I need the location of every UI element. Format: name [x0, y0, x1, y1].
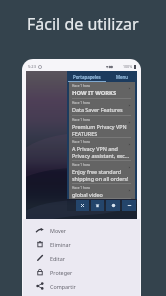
button[interactable]: Mover	[23, 223, 140, 237]
staticText: Hace 1 hora	[72, 101, 90, 105]
button[interactable]: Hace 1 hora	[69, 99, 135, 116]
staticText: Portapapeles	[73, 74, 101, 80]
staticText: 5:23	[28, 64, 36, 69]
button[interactable]: Close	[76, 200, 89, 211]
button[interactable]: Hace 1 hora	[69, 184, 135, 199]
button[interactable]: Hace 1 hora	[69, 82, 135, 99]
staticText: Data Saver Features	[72, 106, 123, 113]
staticText: Hace 1 hora	[72, 140, 90, 144]
button[interactable]: Menu	[107, 71, 137, 82]
button[interactable]: Hace 1 hora	[69, 116, 135, 138]
staticText: Premium Privacy VPN	[72, 123, 127, 130]
staticText: Hace 1 hora	[72, 163, 90, 167]
button[interactable]: More	[122, 200, 136, 211]
staticText: global video	[72, 191, 103, 198]
button[interactable]: Delete	[91, 200, 104, 211]
staticText: shipping on all orders!	[72, 175, 129, 182]
staticText: Mover	[50, 227, 67, 234]
button[interactable]: Proteger	[23, 265, 140, 279]
staticText: Privacy assistant, exc...	[72, 152, 130, 159]
staticText: Proteger	[50, 269, 73, 276]
staticText: Editar	[50, 255, 65, 262]
button[interactable]: Pin	[106, 200, 120, 211]
staticText: Menu	[116, 74, 129, 80]
staticText: 100%	[123, 64, 133, 69]
staticText: Fácil de utilizar	[27, 13, 139, 35]
staticText: A Privacy VPN and	[72, 145, 118, 152]
staticText: Eliminar	[50, 241, 71, 248]
staticText: Hace 1 hora	[72, 186, 90, 190]
staticText: Hace 1 hora	[72, 118, 90, 122]
staticText: Enjoy free standard	[72, 168, 122, 175]
button[interactable]: Compartir	[23, 279, 140, 293]
staticText: Compartir	[50, 283, 76, 290]
button[interactable]: Portapapeles	[67, 71, 107, 82]
staticText: Hace 1 hora	[72, 84, 90, 88]
button[interactable]: Editar	[23, 251, 140, 265]
staticText: HOW IT WORKS	[72, 89, 117, 97]
button[interactable]: Eliminar	[23, 237, 140, 251]
button[interactable]: Hace 1 hora	[69, 161, 135, 184]
button[interactable]: Hace 1 hora	[69, 138, 135, 161]
staticText: FEATURES	[72, 130, 98, 137]
